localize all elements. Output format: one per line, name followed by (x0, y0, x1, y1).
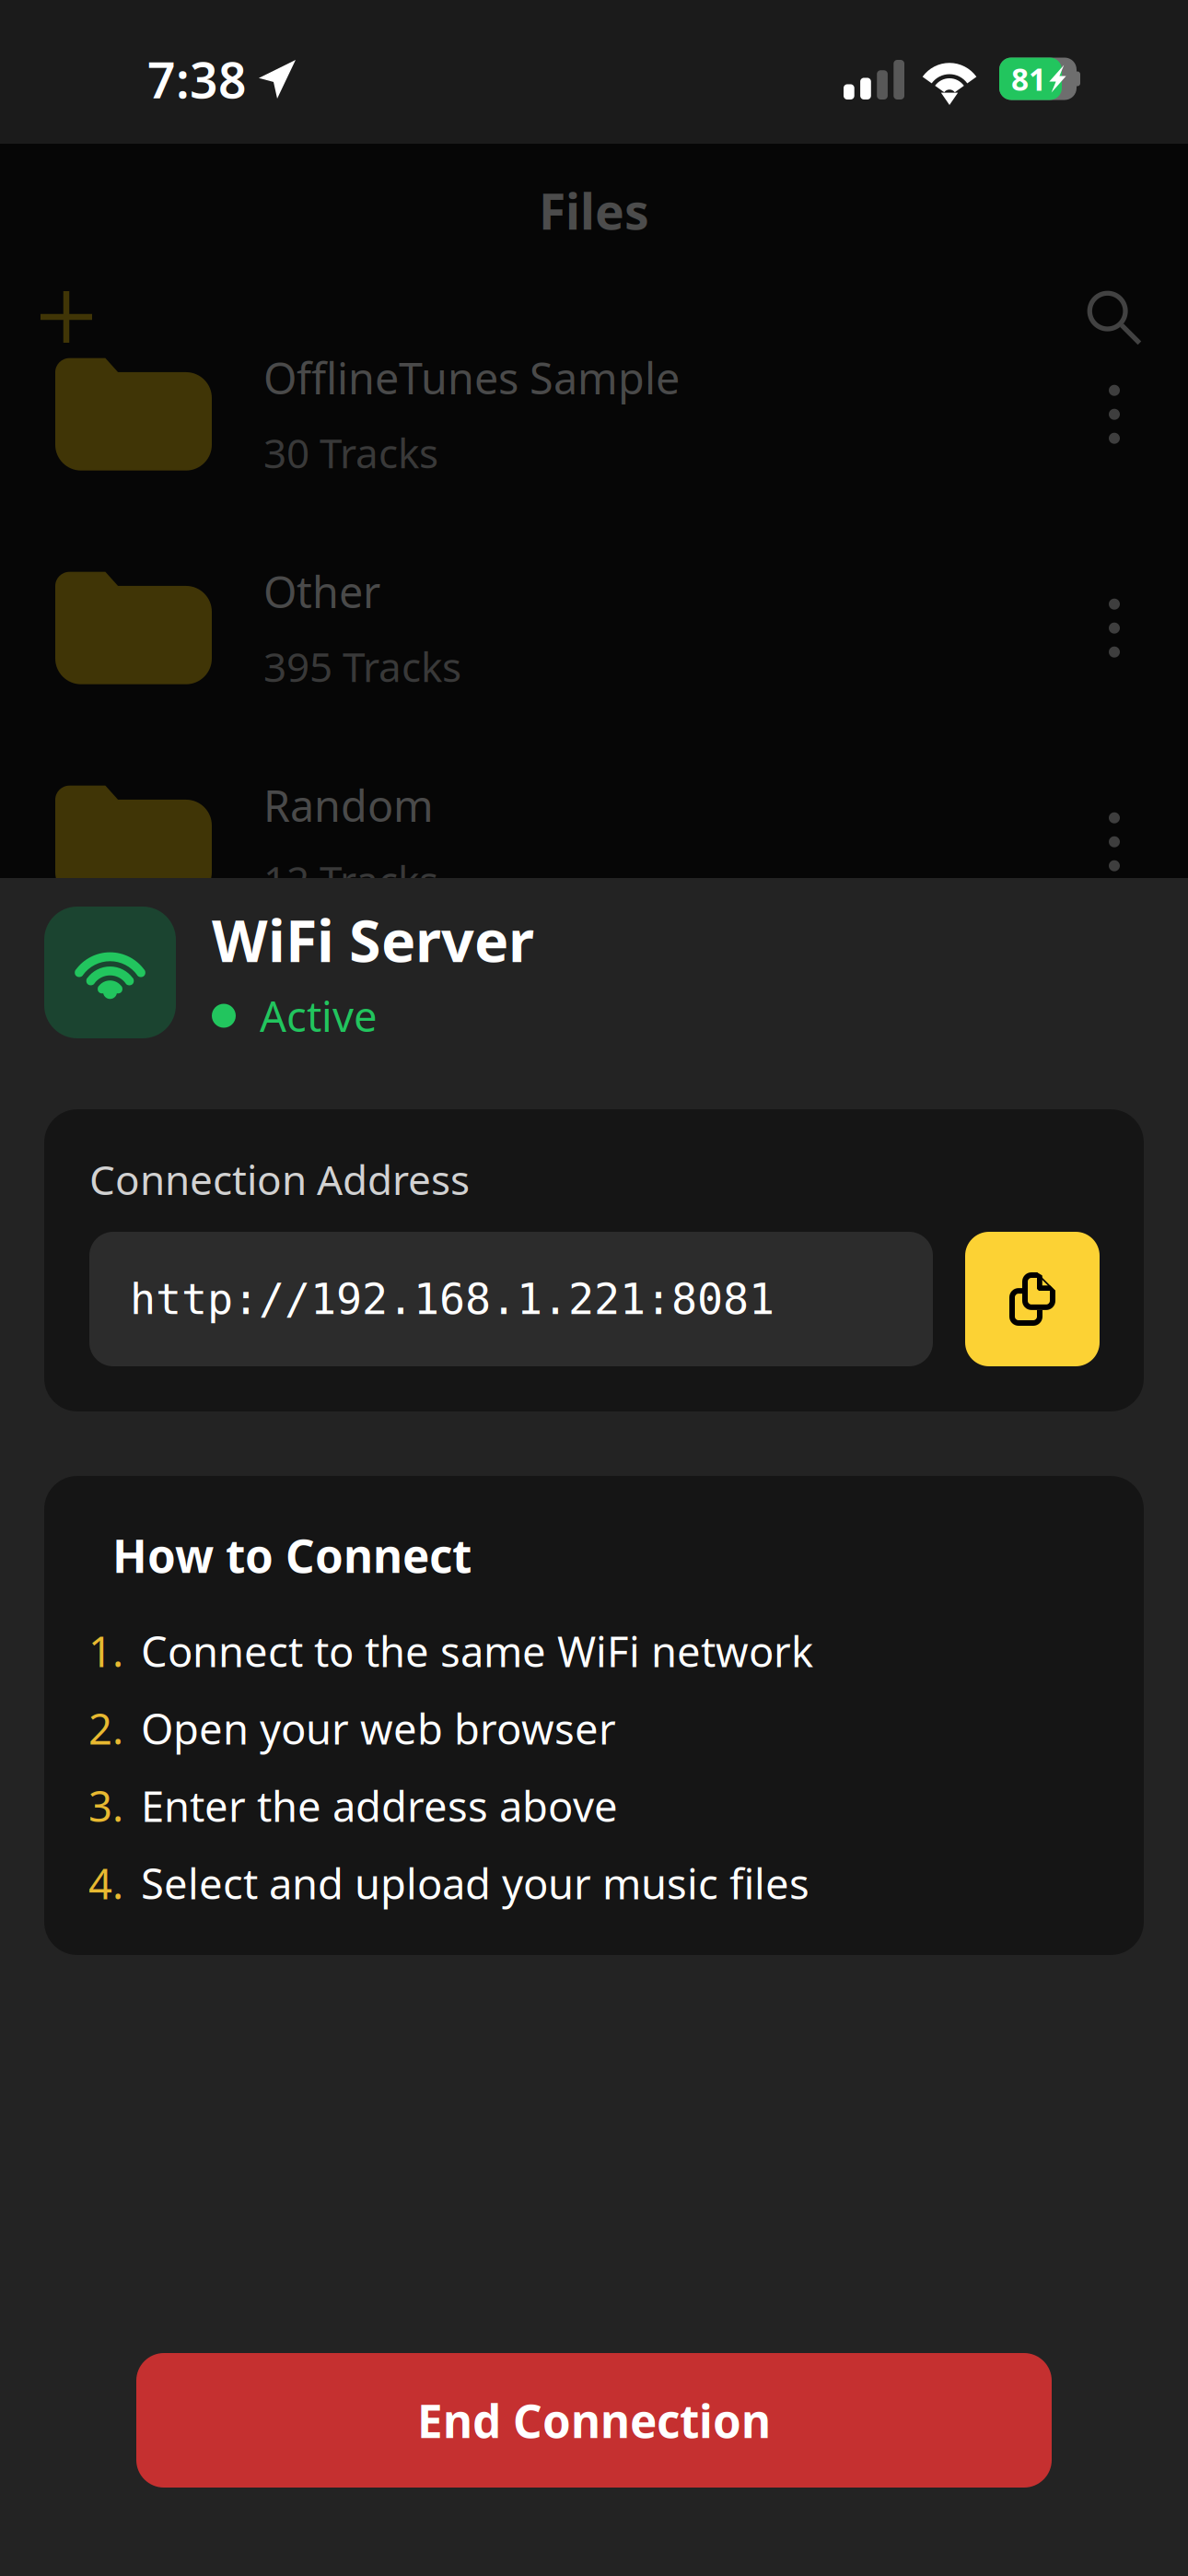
staticText: 81 (1011, 58, 1046, 99)
button[interactable]: Search (1085, 288, 1142, 345)
staticText: Open your web browser (141, 1701, 616, 1756)
staticText: How to Connect (112, 1525, 472, 1585)
staticText: 2. (88, 1701, 123, 1756)
staticText: 7:38 (147, 47, 247, 112)
staticText: OfflineTunes Sample (263, 349, 680, 406)
button[interactable]: Other (0, 563, 1188, 777)
button[interactable]: End Connection (136, 2353, 1052, 2488)
staticText: Files (539, 178, 649, 243)
staticText: 30 Tracks (263, 426, 438, 479)
staticText: 4. (88, 1855, 123, 1911)
staticText: 3. (88, 1778, 123, 1834)
staticText: 1. (88, 1623, 123, 1679)
staticText: Select and upload your music files (141, 1855, 809, 1911)
staticText: Connect to the same WiFi network (141, 1623, 813, 1679)
button[interactable]: OfflineTunes Sample (0, 349, 1188, 563)
staticText: End Connection (417, 2390, 771, 2450)
staticText: Random (263, 777, 434, 834)
staticText: Active (260, 988, 378, 1043)
staticText: 395 Tracks (263, 639, 461, 693)
staticText: Connection Address (89, 1152, 470, 1206)
staticText: Other (263, 563, 380, 620)
button[interactable]: Add (41, 291, 92, 343)
staticText: 12 Tracks (263, 853, 438, 907)
staticText: WiFi Server (212, 901, 534, 978)
button[interactable]: Copy address (965, 1232, 1100, 1366)
staticText: Enter the address above (141, 1778, 618, 1834)
button[interactable]: Random (0, 777, 1188, 990)
staticText: http://192.168.1.221:8081 (130, 1275, 775, 1323)
